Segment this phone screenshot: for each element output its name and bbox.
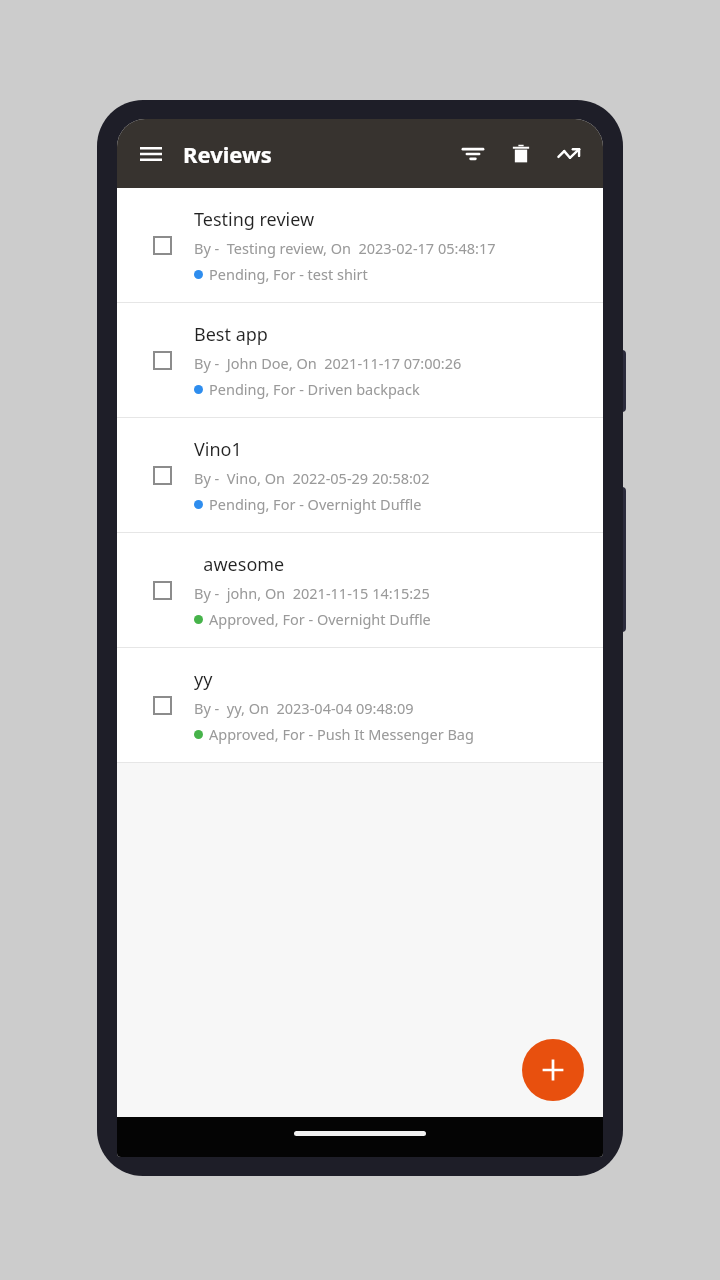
button[interactable]: Delete xyxy=(497,130,545,178)
staticText: Approved, For - Push It Messenger Bag xyxy=(209,724,474,744)
button[interactable]: Select Testing review xyxy=(117,188,603,302)
staticText: Testing review xyxy=(194,207,315,232)
staticText: By - yy, On 2023-04-04 09:48:09 xyxy=(194,698,414,718)
staticText: Pending, For - test shirt xyxy=(209,264,368,284)
staticText: Approved, For - Overnight Duffle xyxy=(209,609,431,629)
button[interactable]: Open navigation menu xyxy=(127,130,175,178)
button[interactable]: Statistics xyxy=(545,130,593,178)
staticText: Pending, For - Driven backpack xyxy=(209,379,420,399)
staticText: By - John Doe, On 2021-11-17 07:00:26 xyxy=(194,353,462,373)
button[interactable]: Select awesome xyxy=(117,533,603,647)
button[interactable]: Select Best app xyxy=(147,345,177,375)
button[interactable]: Select Best app xyxy=(117,303,603,417)
staticText: Best app xyxy=(194,322,268,347)
button[interactable]: Filter xyxy=(449,130,497,178)
staticText: Pending, For - Overnight Duffle xyxy=(209,494,422,514)
staticText: By - Vino, On 2022-05-29 20:58:02 xyxy=(194,468,430,488)
button[interactable]: Select Vino1 xyxy=(117,418,603,532)
button[interactable]: Select awesome xyxy=(147,575,177,605)
staticText: Vino1 xyxy=(194,437,242,462)
staticText: By - Testing review, On 2023-02-17 05:48… xyxy=(194,238,496,258)
button[interactable]: Select yy xyxy=(117,648,603,762)
staticText: awesome xyxy=(194,552,285,577)
button[interactable]: Select yy xyxy=(147,690,177,720)
staticText: By - john, On 2021-11-15 14:15:25 xyxy=(194,583,430,603)
button[interactable]: Add review xyxy=(522,1039,584,1101)
button[interactable]: Select Vino1 xyxy=(147,460,177,490)
staticText: yy xyxy=(194,667,213,692)
staticText: Reviews xyxy=(183,139,272,169)
button[interactable]: Select Testing review xyxy=(147,230,177,260)
